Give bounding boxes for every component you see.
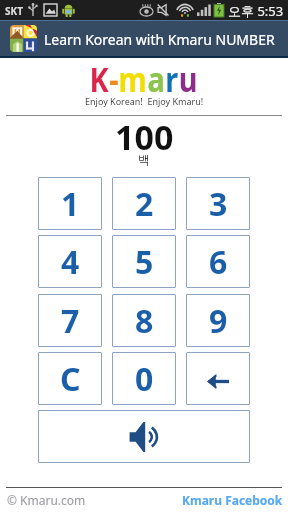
staticText: u [179, 56, 198, 102]
staticText: C [60, 357, 81, 401]
button[interactable]: C [38, 352, 102, 405]
staticText: 0 [135, 357, 154, 401]
button[interactable]: 2 [112, 177, 176, 230]
staticText: m [118, 56, 147, 102]
button[interactable]: Speak [38, 410, 250, 463]
staticText: 백 [138, 152, 150, 167]
button[interactable]: 8 [112, 294, 176, 347]
button[interactable]: 6 [186, 235, 250, 288]
staticText: r [165, 56, 179, 102]
staticText: © Kmaru.com [7, 492, 86, 508]
staticText: Learn Korean with Kmaru NUMBER [44, 30, 275, 49]
button[interactable]: 7 [38, 294, 102, 347]
button[interactable]: 5 [112, 235, 176, 288]
button[interactable]: Backspace [186, 352, 250, 405]
staticText: SKT [5, 4, 23, 18]
button[interactable]: 3 [186, 177, 250, 230]
staticText: a [147, 56, 165, 102]
button[interactable]: Kmaru Facebook [178, 492, 283, 508]
staticText: K [90, 56, 109, 102]
staticText: Kmaru Facebook [182, 492, 283, 508]
button[interactable]: 9 [186, 294, 250, 347]
staticText: 9 [209, 299, 228, 343]
staticText: 5 [135, 240, 154, 284]
staticText: 1 [61, 182, 80, 226]
staticText: 8 [135, 299, 154, 343]
staticText: 7 [61, 299, 80, 343]
staticText: 6 [209, 240, 228, 284]
staticText: 2 [135, 182, 154, 226]
staticText: 100 [115, 114, 174, 160]
staticText: 4 [61, 240, 80, 284]
button[interactable]: 4 [38, 235, 102, 288]
button[interactable]: 0 [112, 352, 176, 405]
button[interactable]: 1 [38, 177, 102, 230]
staticText: - [109, 56, 118, 102]
staticText: 오후 5:53 [228, 2, 284, 20]
staticText: Enjoy Korean! Enjoy Kmaru! [85, 95, 204, 107]
button[interactable]: © Kmaru.com [7, 492, 86, 508]
staticText: 3 [209, 182, 228, 226]
